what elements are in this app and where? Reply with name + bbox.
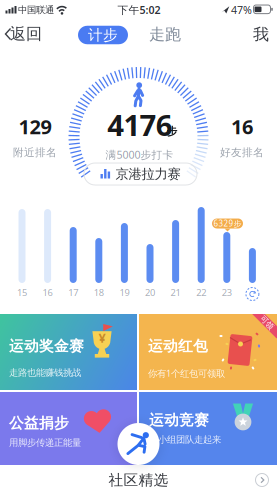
staticText: 16 (231, 113, 253, 140)
staticText: 19 (119, 286, 129, 299)
button[interactable]: 更多社区内容 (255, 473, 268, 486)
staticText: 18 (94, 286, 104, 299)
staticText: 15 (17, 286, 27, 299)
button[interactable]: 计步 (78, 26, 128, 44)
staticText: 用脚步传递正能量 (9, 437, 81, 448)
staticText: 满5000步打卡 (105, 147, 173, 162)
button[interactable]: 返回 (0, 0, 44, 30)
staticText: ¥ (99, 331, 105, 346)
staticText: 中国联通 (18, 4, 54, 16)
staticText: 附近排名 (13, 146, 57, 159)
button[interactable]: 刷新 (246, 287, 259, 300)
staticText: 23 (222, 286, 232, 299)
button[interactable]: 走跑 (143, 22, 187, 46)
staticText: 运动红包 (148, 337, 208, 355)
staticText: 社区精选 (108, 471, 168, 489)
staticText: 返回 (10, 24, 42, 44)
button[interactable]: 京港拉力赛 (84, 163, 197, 185)
staticText: 4176 (107, 105, 173, 144)
staticText: 下午5:02 (117, 3, 160, 17)
staticText: 京港拉力赛 (115, 166, 180, 182)
button[interactable]: 运动竞赛 (139, 392, 277, 465)
staticText: 21 (171, 286, 181, 299)
staticText: 公益捐步 (9, 414, 69, 432)
staticText: 129 (18, 113, 51, 140)
button[interactable]: 社区 (117, 423, 159, 465)
staticText: 17 (68, 286, 78, 299)
staticText: 20 (145, 286, 155, 299)
staticText: 好友排名 (220, 146, 264, 159)
staticText: 22 (196, 286, 206, 299)
button[interactable]: 运动红包 (139, 314, 277, 390)
staticText: 6329步 (213, 218, 241, 229)
staticText: 可领 (259, 318, 275, 327)
staticText: 47% (231, 3, 252, 17)
staticText: 运动竞赛 (149, 411, 209, 429)
staticText: 走跑 (149, 25, 181, 44)
button[interactable]: 运动奖金赛 (0, 314, 137, 390)
staticText: 步 (166, 125, 177, 138)
staticText: 你有1个红包可领取 (148, 367, 225, 379)
staticText: 运动奖金赛 (9, 337, 84, 355)
button[interactable]: 公益捐步 (0, 392, 137, 465)
staticText: 16 (43, 286, 53, 299)
staticText: 计步 (88, 26, 118, 44)
button[interactable]: 我 (248, 22, 274, 46)
staticText: 和小组团队走起来 (149, 434, 221, 445)
staticText: 走路也能赚钱挑战 (9, 367, 81, 378)
staticText: 我 (253, 25, 269, 44)
